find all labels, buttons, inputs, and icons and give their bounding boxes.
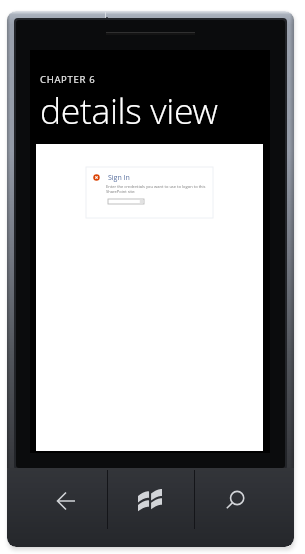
button[interactable]: Start bbox=[107, 468, 194, 547]
staticText: details view bbox=[40, 86, 218, 134]
staticText: CHAPTER 6 bbox=[40, 73, 96, 86]
staticText: Sign In bbox=[108, 173, 130, 183]
button[interactable]: Search bbox=[194, 468, 294, 547]
button[interactable]: Back bbox=[7, 468, 107, 547]
staticText: Enter the credentials you want to use to… bbox=[106, 184, 206, 194]
